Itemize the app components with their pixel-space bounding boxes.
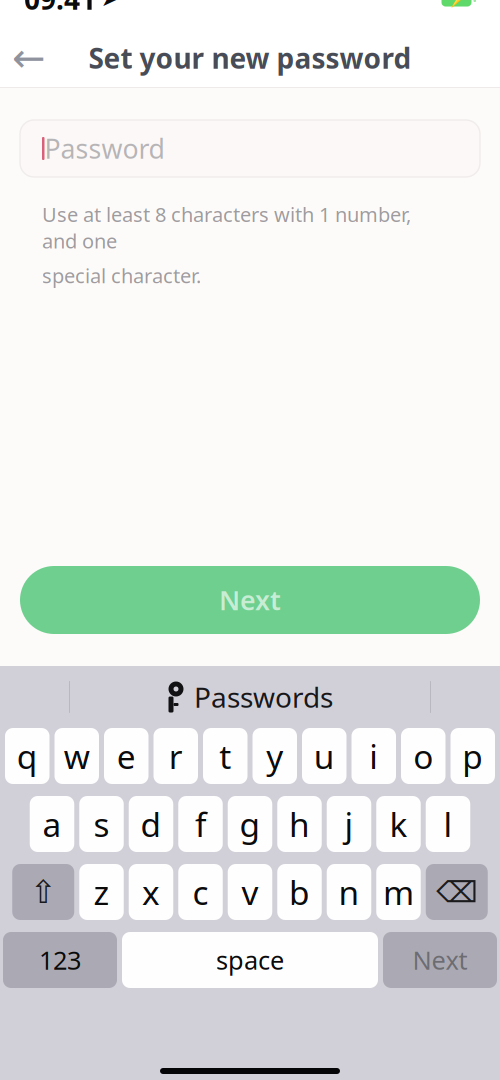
button[interactable]: n bbox=[327, 864, 371, 920]
button[interactable]: Delete bbox=[426, 864, 488, 920]
button[interactable]: m bbox=[376, 864, 421, 920]
staticText: 123 bbox=[39, 943, 81, 977]
button[interactable]: w bbox=[54, 728, 99, 784]
staticText: c bbox=[192, 870, 208, 914]
staticText: Next bbox=[219, 582, 281, 618]
staticText: q bbox=[17, 734, 38, 778]
button[interactable]: o bbox=[401, 728, 445, 784]
staticText: special character. bbox=[42, 262, 201, 289]
staticText: u bbox=[314, 734, 335, 778]
staticText: y bbox=[266, 734, 283, 778]
button[interactable]: z bbox=[79, 864, 124, 920]
staticText: h bbox=[289, 802, 310, 846]
staticText: v bbox=[241, 870, 258, 914]
button[interactable]: h bbox=[277, 796, 322, 852]
button[interactable]: g bbox=[228, 796, 272, 852]
button[interactable]: p bbox=[450, 728, 495, 784]
staticText: r bbox=[169, 734, 183, 778]
button[interactable]: Back bbox=[0, 28, 58, 88]
button[interactable]: Password bbox=[0, 120, 500, 177]
staticText: x bbox=[142, 870, 160, 914]
button[interactable]: s bbox=[79, 796, 124, 852]
staticText: ⚡ bbox=[446, 0, 466, 8]
button[interactable]: v bbox=[228, 864, 272, 920]
staticText: ➤ bbox=[101, 0, 118, 10]
staticText: t bbox=[219, 734, 231, 778]
staticText: d bbox=[140, 802, 161, 846]
staticText: w bbox=[64, 734, 90, 778]
button[interactable]: c bbox=[178, 864, 223, 920]
staticText: m bbox=[383, 870, 414, 914]
staticText: z bbox=[93, 870, 109, 914]
staticText: b bbox=[289, 870, 310, 914]
staticText: Password bbox=[44, 131, 164, 166]
staticText: Passwords bbox=[194, 678, 333, 716]
button[interactable]: d bbox=[129, 796, 173, 852]
button[interactable]: i bbox=[351, 728, 396, 784]
staticText: p bbox=[462, 734, 483, 778]
staticText: k bbox=[389, 802, 407, 846]
staticText: g bbox=[239, 802, 260, 846]
button[interactable]: space bbox=[122, 932, 378, 988]
staticText: o bbox=[413, 734, 433, 778]
button[interactable]: f bbox=[178, 796, 223, 852]
staticText: j bbox=[344, 802, 353, 846]
staticText: n bbox=[338, 870, 359, 914]
button[interactable]: Next bbox=[383, 932, 497, 988]
button[interactable]: x bbox=[129, 864, 173, 920]
button[interactable]: b bbox=[277, 864, 322, 920]
button[interactable]: y bbox=[252, 728, 297, 784]
button[interactable]: l bbox=[426, 796, 470, 852]
staticText: ← bbox=[12, 35, 46, 81]
staticText: i bbox=[369, 734, 378, 778]
staticText: s bbox=[93, 802, 109, 846]
button[interactable]: k bbox=[376, 796, 421, 852]
button[interactable]: Shift bbox=[12, 864, 74, 920]
staticText: ⇧ bbox=[30, 874, 57, 910]
staticText: space bbox=[216, 943, 284, 977]
staticText: Next bbox=[412, 943, 467, 977]
button[interactable]: u bbox=[302, 728, 346, 784]
button[interactable]: Next bbox=[0, 566, 500, 634]
staticText: e bbox=[117, 734, 136, 778]
staticText: 09:41 bbox=[24, 0, 96, 18]
button[interactable]: q bbox=[5, 728, 49, 784]
button[interactable]: 123 bbox=[3, 932, 117, 988]
staticText: Set your new password bbox=[88, 39, 411, 77]
staticText: ⌫ bbox=[436, 875, 477, 909]
button[interactable]: a bbox=[30, 796, 74, 852]
staticText: Use at least 8 characters with 1 number,… bbox=[42, 201, 411, 254]
button[interactable]: t bbox=[203, 728, 247, 784]
staticText: f bbox=[195, 802, 206, 846]
button[interactable]: j bbox=[327, 796, 371, 852]
button[interactable]: Passwords bbox=[149, 674, 351, 720]
staticText: a bbox=[42, 802, 61, 846]
button[interactable]: r bbox=[153, 728, 198, 784]
button[interactable]: e bbox=[104, 728, 148, 784]
staticText: l bbox=[443, 802, 452, 846]
